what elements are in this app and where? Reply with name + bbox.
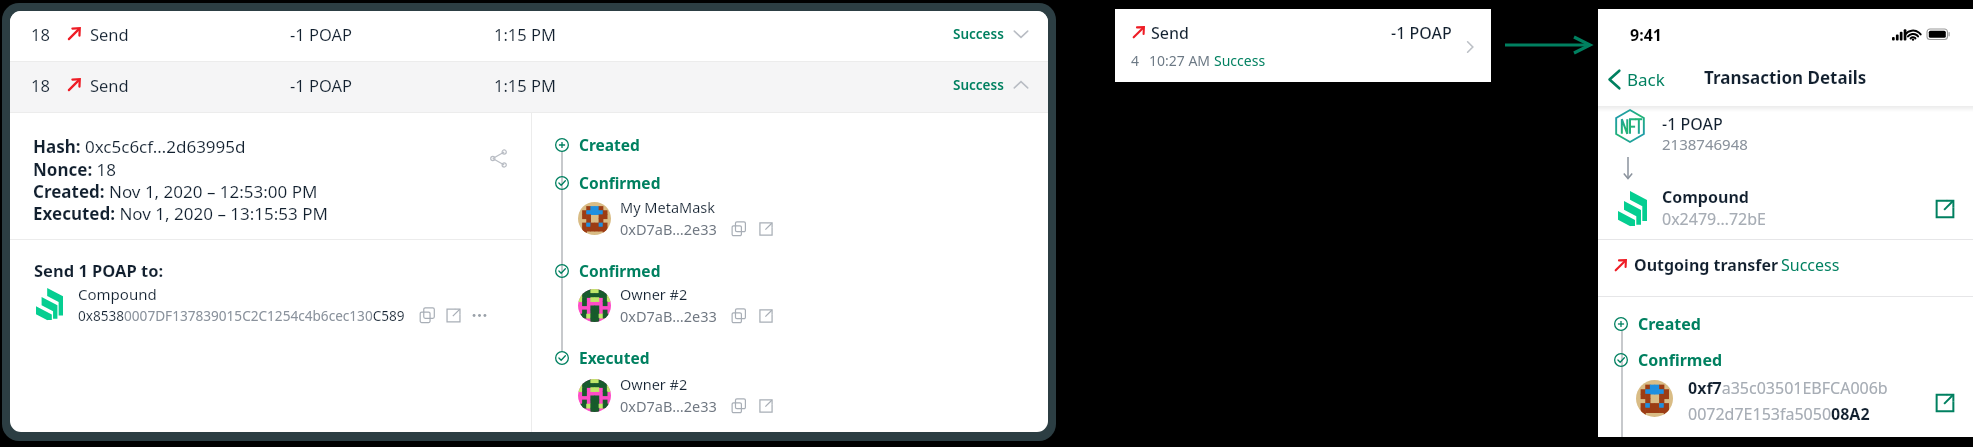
staticText: 18 <box>31 23 50 45</box>
button[interactable]: Copy address <box>731 308 747 324</box>
staticText: -1 POAP <box>290 23 353 45</box>
staticText: Confirmed <box>579 172 661 193</box>
button[interactable]: Copy address <box>731 221 747 237</box>
button[interactable]: Send <box>1115 9 1491 82</box>
staticText: Success <box>1214 51 1266 70</box>
staticText: Outgoing transfer <box>1634 254 1779 276</box>
button[interactable]: Back <box>1607 58 1665 100</box>
staticText: 0xD7aB…2e33 <box>620 306 717 326</box>
staticText: Back <box>1627 68 1665 91</box>
staticText: -1 POAP <box>1662 113 1723 135</box>
staticText: 18 <box>31 74 50 96</box>
staticText: Success <box>1781 254 1840 276</box>
staticText: Transaction Details <box>1704 66 1867 89</box>
staticText: 0072d7E153fa505008A2 <box>1688 403 1870 425</box>
button[interactable]: Open in explorer <box>758 308 774 324</box>
staticText: 0x85380007DF137839015C2C1254c4b6cec130C5… <box>78 306 405 325</box>
staticText: Send 1 POAP to: <box>34 259 164 281</box>
button[interactable]: Copy address <box>419 307 436 324</box>
staticText: Send <box>1151 22 1189 44</box>
staticText: Owner #2 <box>620 374 688 394</box>
staticText: My MetaMask <box>620 197 715 217</box>
staticText: 0x2479…72bE <box>1662 208 1766 230</box>
staticText: Success <box>953 25 1004 43</box>
button[interactable]: Open in explorer <box>1934 392 1956 414</box>
button[interactable]: More <box>471 307 488 324</box>
staticText: 4 <box>1131 51 1140 70</box>
staticText: Owner #2 <box>620 284 688 304</box>
staticText: Success <box>953 76 1004 94</box>
button[interactable]: 18 <box>10 62 1048 112</box>
staticText: 0xf7a35c03501EBFCA006b <box>1688 377 1888 399</box>
staticText: Created <box>579 134 640 155</box>
staticText: 10:27 AM <box>1149 51 1211 70</box>
staticText: -1 POAP <box>290 74 353 96</box>
staticText: Compound <box>1662 186 1749 208</box>
staticText: Send <box>90 23 129 45</box>
button[interactable]: Share <box>489 149 508 168</box>
staticText: 2138746948 <box>1662 134 1748 154</box>
staticText: Confirmed <box>1638 349 1723 371</box>
button[interactable]: Open in explorer <box>445 307 462 324</box>
button[interactable]: Open in explorer <box>758 221 774 237</box>
staticText: Confirmed <box>579 260 661 281</box>
staticText: Compound <box>78 284 157 304</box>
button[interactable]: Open in explorer <box>758 398 774 414</box>
staticText: 1:15 PM <box>494 74 556 96</box>
button[interactable]: 18 <box>10 11 1048 61</box>
button[interactable]: Open in explorer <box>1934 198 1956 220</box>
staticText: Executed <box>579 347 650 368</box>
staticText: Created <box>1638 313 1701 335</box>
staticText: -1 POAP <box>1391 22 1452 44</box>
button[interactable]: Copy address <box>731 398 747 414</box>
staticText: 1:15 PM <box>494 23 556 45</box>
staticText: 9:41 <box>1630 24 1662 46</box>
staticText: 0xD7aB…2e33 <box>620 396 717 416</box>
staticText: 0xD7aB…2e33 <box>620 219 717 239</box>
staticText: Send <box>90 74 129 96</box>
staticText: Hash: 0xc5c6cf…2d63995d Nonce: 18 Create… <box>33 135 328 224</box>
